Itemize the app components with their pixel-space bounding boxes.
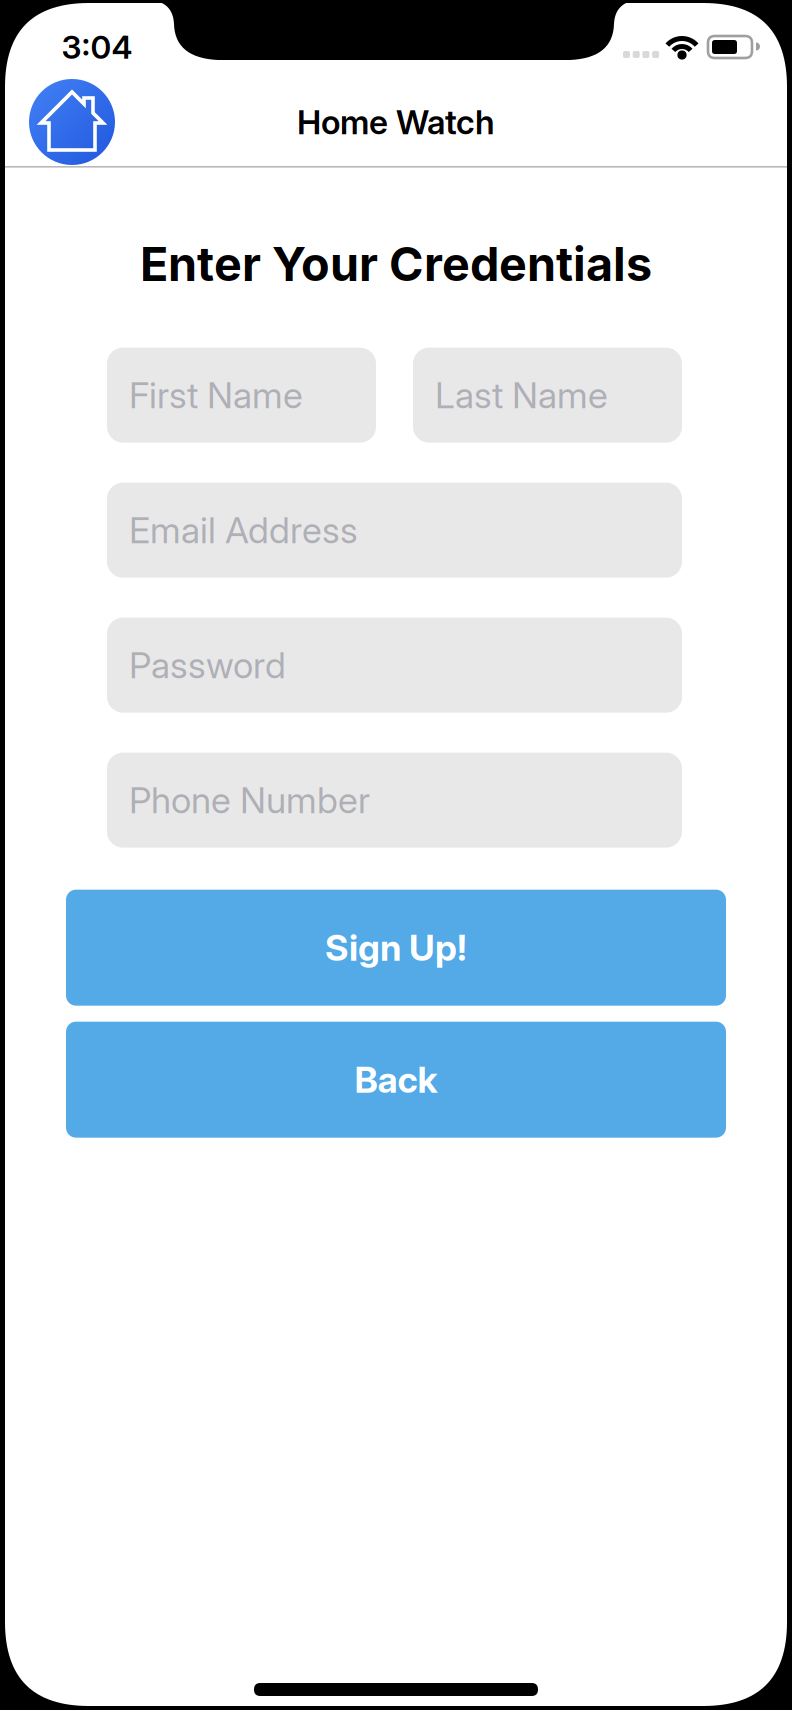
staticText: Phone Number [129,779,370,821]
staticText: Home Watch [297,102,495,142]
staticText: Enter Your Credentials [140,237,652,292]
staticText: First Name [129,374,303,416]
button[interactable]: Back [66,1022,726,1138]
button[interactable]: Home [29,79,115,165]
staticText: Password [129,644,286,686]
staticText: Email Address [129,509,358,551]
staticText: Back [354,1058,437,1101]
staticText: 3:04 [61,28,132,66]
button[interactable]: Sign Up! [66,890,726,1006]
staticText: Last Name [435,374,608,416]
staticText: Sign Up! [325,926,467,969]
